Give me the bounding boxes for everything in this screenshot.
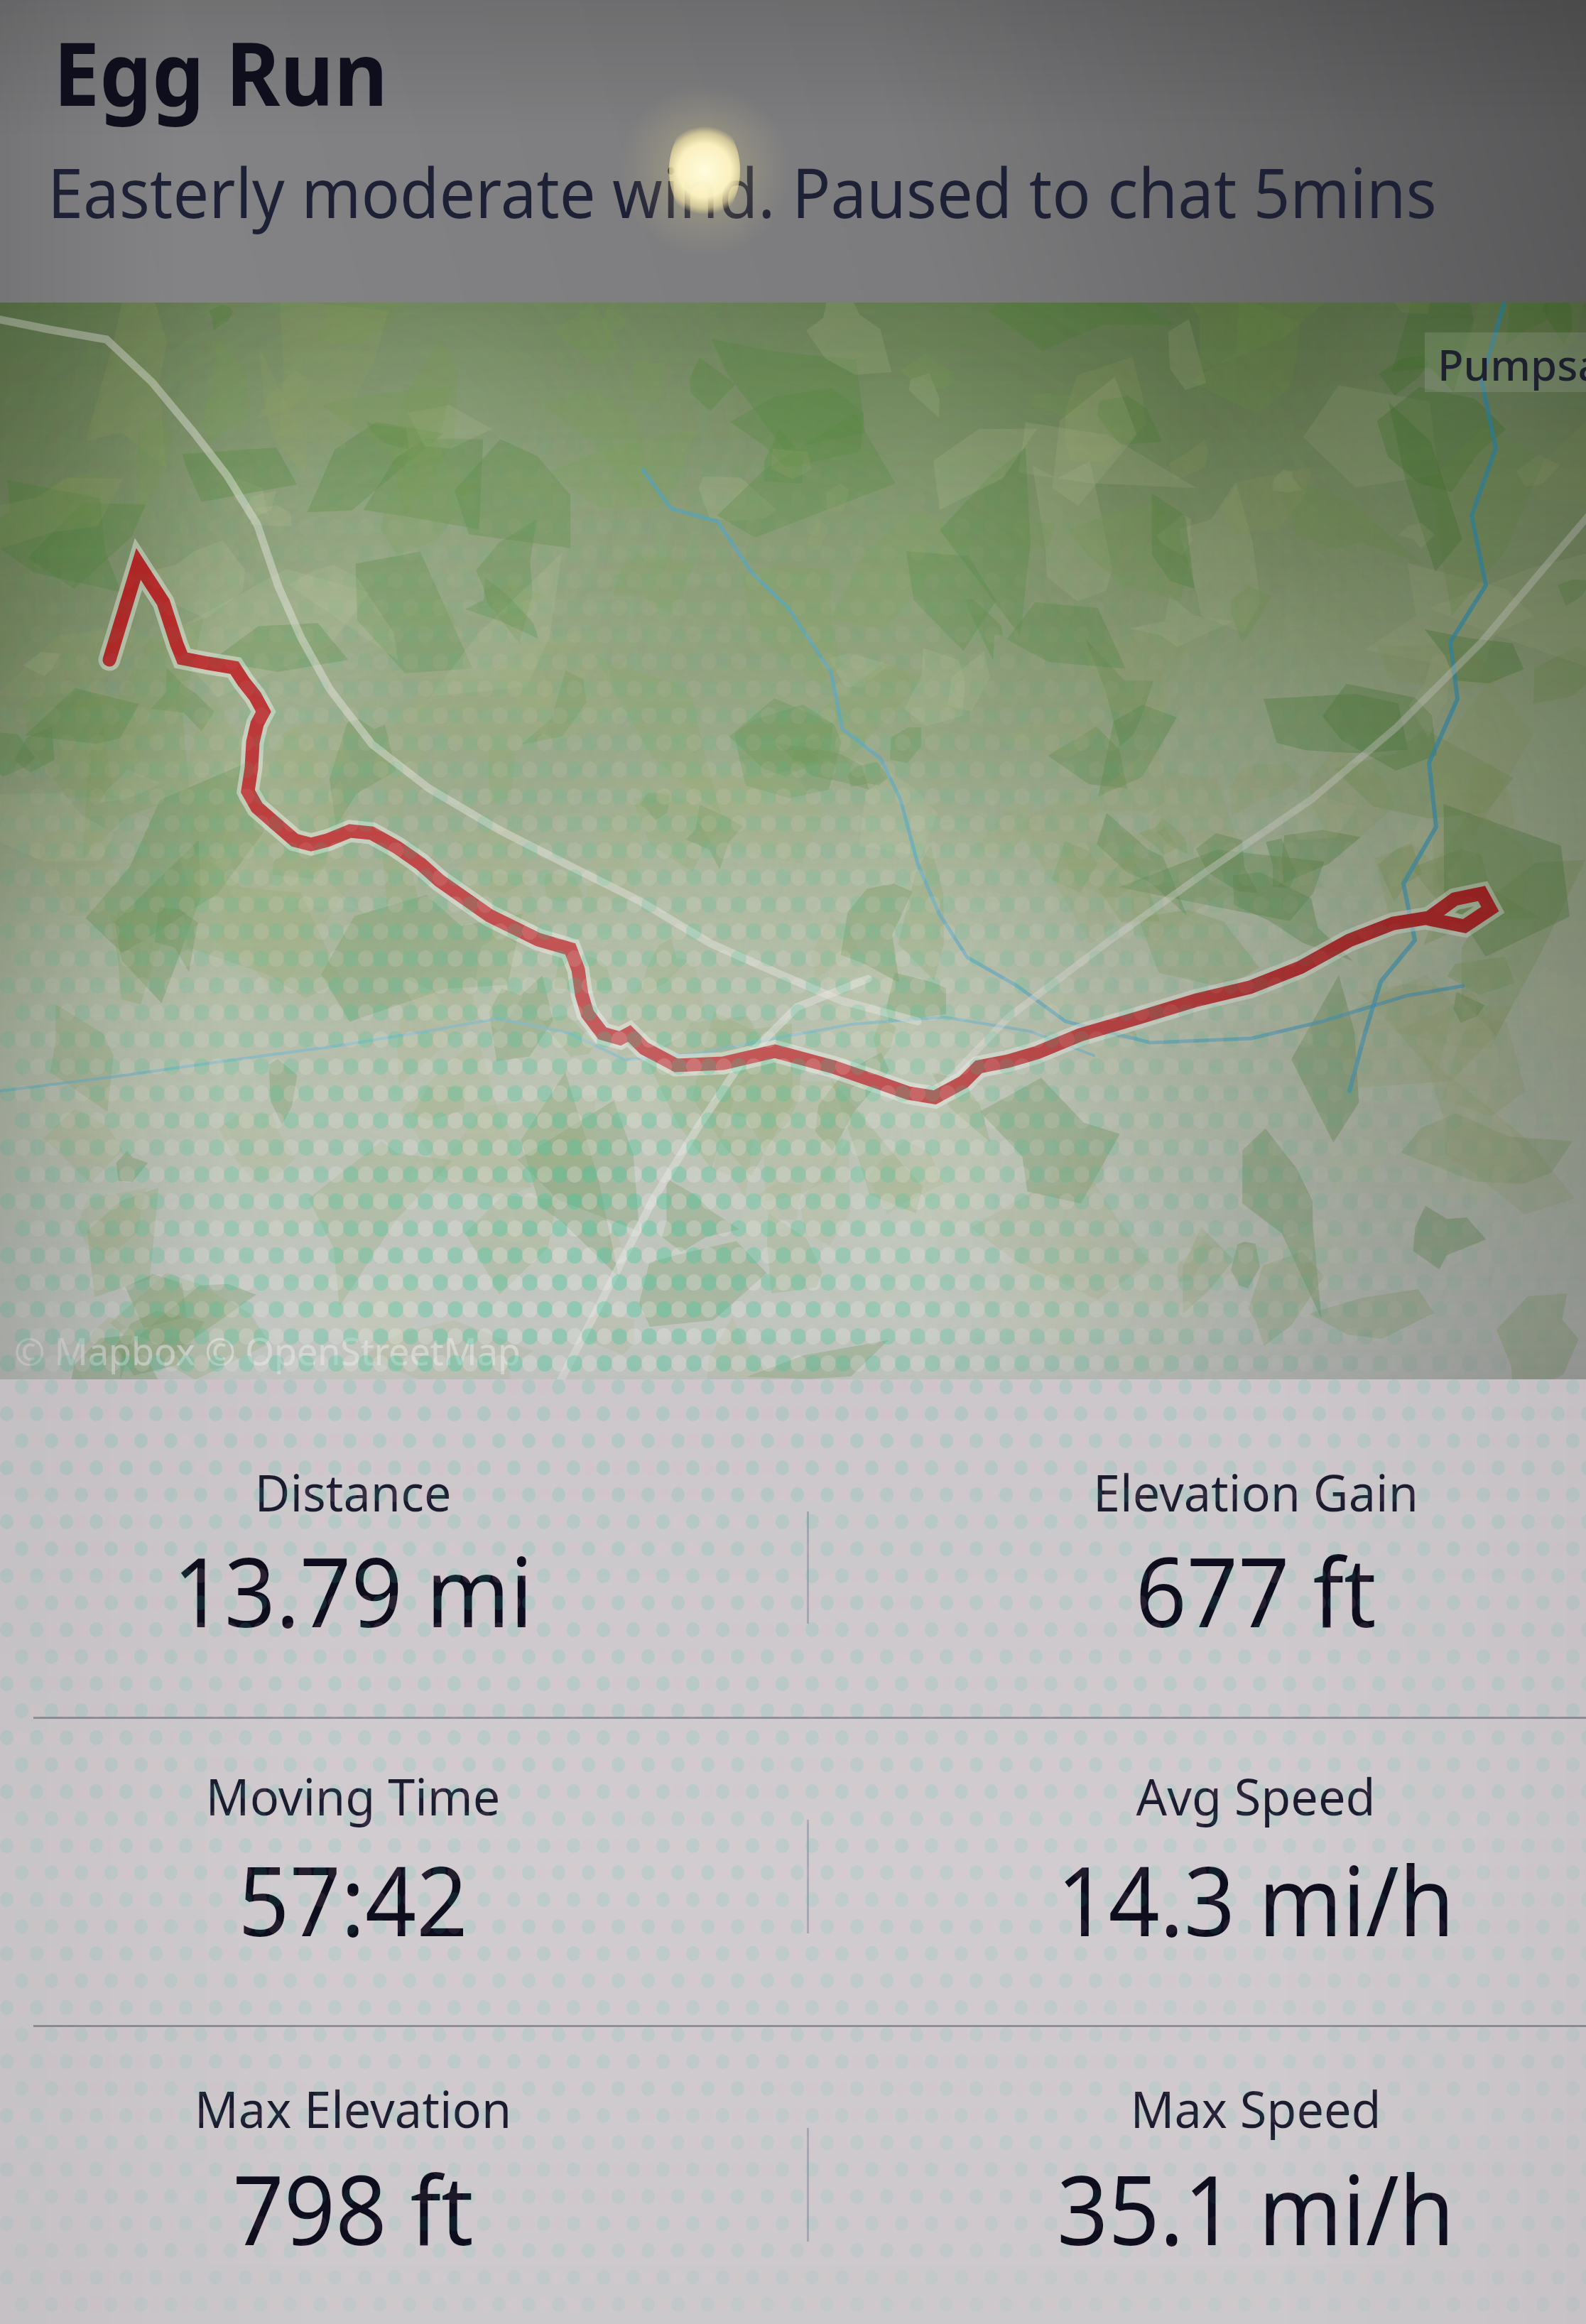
button[interactable]: Moving Time — [0, 1761, 850, 1972]
staticText: Easterly moderate wind. Paused to chat 5… — [48, 145, 1437, 238]
staticText: 14.3 mi/h — [793, 1833, 1586, 1965]
staticText: Egg Run — [53, 11, 388, 131]
staticText: Elevation Gain — [783, 1457, 1586, 1526]
staticText: Moving Time — [0, 1761, 825, 1830]
button[interactable]: Activity route map — [0, 303, 1586, 1379]
staticText: 798 ft — [0, 2142, 815, 2274]
button[interactable]: Elevation Gain — [759, 1457, 1586, 1663]
staticText: Distance — [0, 1457, 825, 1526]
staticText: 13.79 mi — [0, 1524, 815, 1656]
staticText: 35.1 mi/h — [793, 2142, 1586, 2274]
staticText: 57:42 — [0, 1833, 815, 1965]
staticText: Pumpsaint — [1438, 335, 1586, 393]
button[interactable]: Max Speed — [759, 2073, 1586, 2281]
button[interactable]: Egg Run — [0, 0, 1586, 303]
staticText: Max Speed — [783, 2073, 1586, 2143]
button[interactable]: Avg Speed — [759, 1761, 1586, 1972]
staticText: Max Elevation — [0, 2073, 825, 2143]
staticText: © Mapbox © OpenStreetMap — [14, 1325, 521, 1376]
button[interactable]: Max Elevation — [0, 2073, 850, 2281]
staticText: Avg Speed — [783, 1761, 1586, 1830]
staticText: 677 ft — [793, 1524, 1586, 1656]
button[interactable]: Distance — [0, 1457, 850, 1663]
